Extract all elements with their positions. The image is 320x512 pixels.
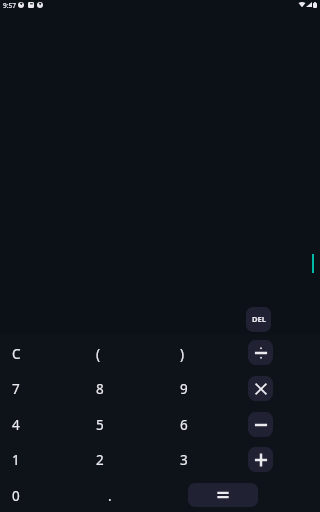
button[interactable]: 5: [84, 407, 168, 442]
button[interactable]: (: [84, 336, 168, 371]
staticText: 3: [180, 451, 188, 469]
button[interactable]: DEL: [246, 307, 271, 332]
button[interactable]: Equals: [188, 483, 258, 507]
staticText: C: [12, 345, 21, 363]
staticText: 9: [180, 380, 188, 398]
staticText: 9:57: [3, 1, 16, 10]
staticText: ): [180, 345, 185, 363]
button[interactable]: ): [168, 336, 252, 371]
staticText: 5: [96, 416, 104, 434]
button[interactable]: C: [0, 336, 84, 371]
staticText: 8: [96, 380, 104, 398]
staticText: 0: [12, 487, 20, 505]
button[interactable]: 6: [168, 407, 252, 442]
button[interactable]: 2: [84, 442, 168, 477]
button[interactable]: Plus: [248, 447, 273, 472]
staticText: 4: [12, 416, 20, 434]
staticText: 7: [12, 380, 20, 398]
button[interactable]: .: [96, 478, 180, 512]
button[interactable]: Multiply: [248, 376, 273, 401]
staticText: 2: [96, 451, 104, 469]
staticText: DEL: [252, 314, 267, 324]
button[interactable]: 0: [0, 478, 84, 512]
button[interactable]: 8: [84, 371, 168, 406]
staticText: 1: [12, 451, 20, 469]
button[interactable]: 4: [0, 407, 84, 442]
staticText: (: [96, 345, 101, 363]
button[interactable]: Divide: [248, 340, 273, 365]
button[interactable]: 3: [168, 442, 252, 477]
button[interactable]: 7: [0, 371, 84, 406]
staticText: 6: [180, 416, 188, 434]
button[interactable]: 1: [0, 442, 84, 477]
button[interactable]: Minus: [248, 412, 273, 437]
button[interactable]: 9: [168, 371, 252, 406]
staticText: .: [108, 487, 112, 505]
